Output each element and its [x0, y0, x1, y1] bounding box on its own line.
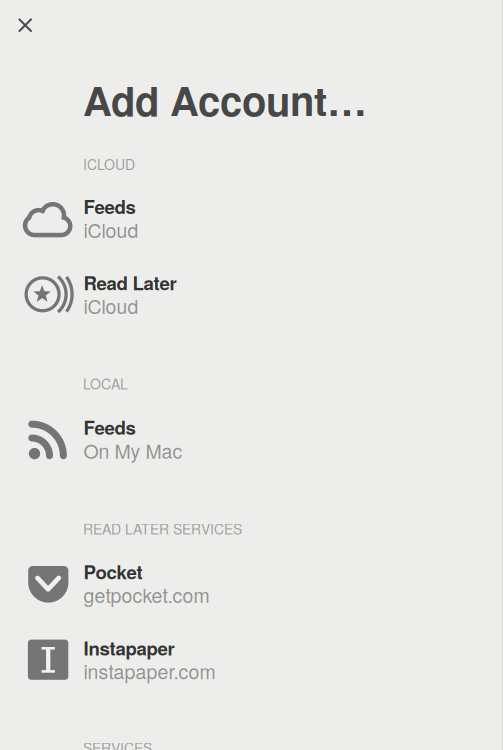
staticText: READ LATER SERVICES	[83, 518, 242, 538]
button[interactable]: Instapaper	[0, 631, 503, 689]
staticText: Pocket	[83, 558, 142, 585]
staticText: Instapaper	[83, 634, 174, 661]
button[interactable]: Close	[9, 9, 41, 41]
staticText: Add Account…	[83, 71, 367, 128]
staticText: iCloud	[83, 216, 138, 243]
staticText: ICLOUD	[83, 154, 135, 174]
staticText: Read Later	[83, 269, 176, 296]
button[interactable]: Feeds	[0, 411, 503, 469]
staticText: Feeds	[83, 414, 135, 440]
staticText: iCloud	[83, 292, 138, 320]
button[interactable]: Read Later	[0, 266, 503, 324]
staticText: LOCAL	[83, 373, 128, 393]
button[interactable]: Feeds	[0, 190, 503, 248]
staticText: SERVICES	[83, 737, 152, 750]
button[interactable]: Pocket	[0, 555, 503, 613]
staticText: Feeds	[83, 193, 135, 220]
staticText: On My Mac	[83, 436, 182, 464]
staticText: instapaper.com	[83, 657, 215, 685]
staticText: getpocket.com	[83, 581, 209, 609]
